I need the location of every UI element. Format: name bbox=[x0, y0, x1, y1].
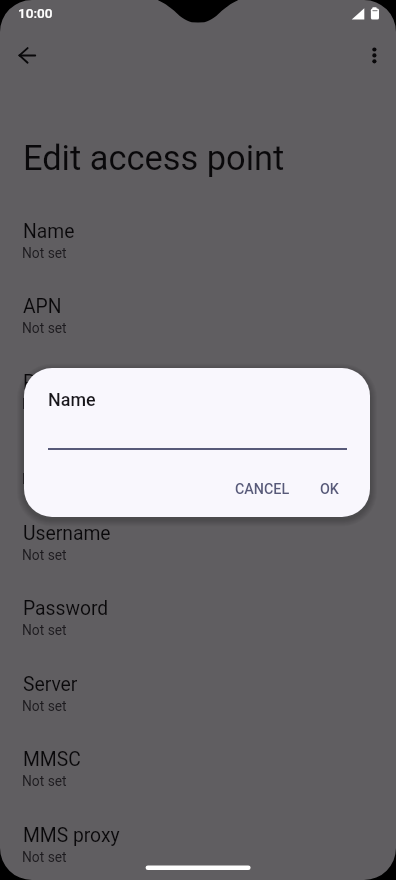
staticText: Edit access point bbox=[23, 138, 285, 178]
staticText: Server bbox=[23, 673, 78, 696]
staticText: Not set bbox=[22, 698, 67, 714]
staticText: Password bbox=[23, 597, 109, 620]
button[interactable]: Username bbox=[0, 508, 396, 570]
staticText: MMS proxy bbox=[23, 824, 120, 847]
staticText: Not set bbox=[22, 245, 67, 261]
button[interactable]: Password bbox=[0, 583, 396, 645]
button[interactable]: MMSC bbox=[0, 734, 396, 796]
staticText: Not set bbox=[22, 849, 67, 865]
button[interactable]: MMS proxy bbox=[0, 810, 396, 872]
staticText: Username bbox=[23, 522, 111, 545]
staticText: Not set bbox=[22, 320, 67, 336]
staticText: Not set bbox=[22, 471, 67, 487]
staticText: Not set bbox=[22, 396, 67, 412]
staticText: Name bbox=[48, 389, 96, 410]
staticText: Name bbox=[23, 220, 75, 243]
staticText: Not set bbox=[22, 622, 67, 638]
button[interactable]: More options bbox=[350, 31, 396, 79]
staticText: Not set bbox=[22, 547, 67, 563]
staticText: OK bbox=[320, 481, 339, 498]
button[interactable]: CANCEL bbox=[225, 473, 300, 506]
button[interactable]: APN bbox=[0, 281, 396, 343]
button[interactable]: Server bbox=[0, 659, 396, 721]
button[interactable]: Name bbox=[0, 206, 396, 268]
staticText: Proxy bbox=[23, 371, 72, 394]
button[interactable]: Proxy bbox=[0, 357, 396, 419]
staticText: CANCEL bbox=[235, 481, 290, 498]
button[interactable]: OK bbox=[310, 473, 349, 506]
staticText: 10:00 bbox=[18, 5, 53, 21]
staticText: APN bbox=[23, 295, 62, 318]
staticText: Not set bbox=[22, 773, 67, 789]
button[interactable]: Navigate up bbox=[3, 31, 51, 79]
staticText: Port bbox=[23, 446, 60, 469]
button[interactable]: Port bbox=[0, 432, 396, 494]
staticText: MMSC bbox=[23, 748, 81, 771]
